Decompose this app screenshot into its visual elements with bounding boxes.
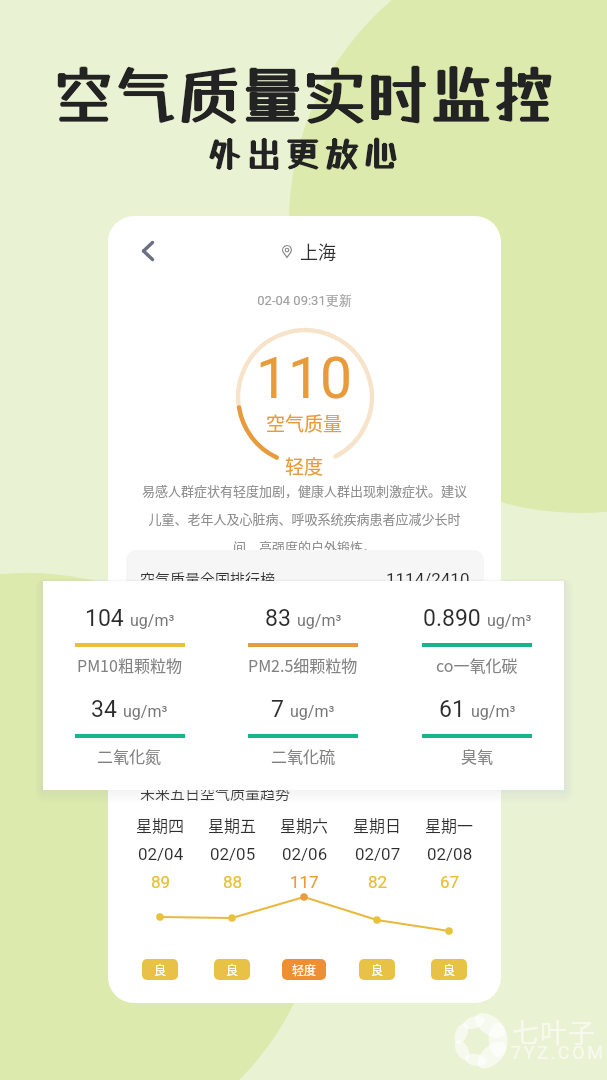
staticText: 02/07 [355, 844, 401, 864]
staticText: 星期四 [136, 813, 185, 836]
button[interactable]: 星期日 [341, 813, 413, 892]
staticText: 104 [85, 605, 124, 632]
staticText: 1114/2410 [386, 569, 470, 589]
button[interactable]: 7 [216, 696, 390, 767]
button[interactable]: 0.890 [390, 605, 564, 676]
staticText: 110 [256, 345, 353, 412]
button[interactable]: 星期四 [124, 813, 196, 892]
staticText: 空气质量实时监控 [52, 56, 556, 130]
staticText: 二氧化硫 [271, 744, 336, 767]
staticText: 易感人群症状有轻度加剧，健康人群出现刺激症状。建议儿童、老年人及心脏病、呼吸系统… [138, 481, 471, 556]
staticText: 良 [226, 961, 239, 978]
staticText: co一氧化碳 [436, 653, 518, 676]
staticText: ug/m³ [290, 702, 335, 721]
staticText: 空气质量实时监控 [52, 58, 556, 132]
staticText: 88 [223, 872, 243, 892]
staticText: 83 [265, 605, 291, 632]
staticText: 02/05 [210, 844, 256, 864]
staticText: 外出更放心 [207, 134, 402, 174]
button[interactable]: 良 [214, 959, 250, 980]
staticText: 61 [439, 696, 465, 723]
staticText: 空气质量全国排行榜 [140, 568, 276, 590]
staticText: 星期五 [208, 813, 257, 836]
staticText: ug/m³ [471, 702, 516, 721]
staticText: ug/m³ [130, 611, 175, 630]
staticText: 上海 [300, 238, 336, 264]
staticText: 外出更放心 [209, 134, 404, 174]
button[interactable]: 34 [43, 696, 216, 767]
button[interactable]: Back [130, 234, 164, 268]
staticText: ug/m³ [123, 702, 168, 721]
staticText: 117 [290, 872, 319, 892]
button[interactable]: 61 [390, 696, 564, 767]
button[interactable]: 星期五 [196, 813, 268, 892]
staticText: 臭氧 [461, 744, 494, 767]
button[interactable]: 104 [43, 605, 216, 676]
staticText: 外出更放心 [208, 133, 403, 173]
staticText: 空气质量 [266, 409, 343, 437]
staticText: 02/06 [282, 844, 328, 864]
staticText: 外出更放心 [208, 135, 403, 175]
staticText: 轻度 [285, 452, 324, 480]
button[interactable]: 星期一 [413, 813, 485, 892]
staticText: 34 [91, 696, 117, 723]
button[interactable]: 轻度 [282, 959, 326, 980]
staticText: 轻度 [292, 961, 317, 978]
staticText: 67 [440, 872, 460, 892]
staticText: 空气质量实时监控 [52, 57, 556, 131]
staticText: 二氧化氮 [97, 744, 162, 767]
staticText: 7YZ.COM [511, 1042, 606, 1063]
staticText: PM10粗颗粒物 [77, 653, 182, 676]
staticText: 02/04 [138, 844, 184, 864]
staticText: 未来五日空气质量趋势 [140, 782, 291, 804]
staticText: 良 [371, 961, 384, 978]
staticText: 七叶子 [512, 1012, 596, 1051]
staticText: 82 [368, 872, 388, 892]
staticText: 0.890 [423, 605, 481, 632]
staticText: 星期一 [425, 813, 474, 836]
staticText: ug/m³ [297, 611, 342, 630]
staticText: 外出更放心 [208, 134, 403, 174]
button[interactable]: 星期六 [268, 813, 340, 892]
staticText: 空气质量实时监控 [51, 57, 555, 131]
staticText: 良 [443, 961, 456, 978]
staticText: 02-04 09:31更新 [108, 292, 501, 308]
staticText: PM2.5细颗粒物 [248, 653, 358, 676]
button[interactable]: 良 [431, 959, 467, 980]
staticText: 良 [154, 961, 167, 978]
staticText: 空气质量实时监控 [53, 57, 557, 131]
staticText: 89 [151, 872, 171, 892]
button[interactable]: 良 [142, 959, 178, 980]
staticText: 02/08 [427, 844, 473, 864]
staticText: 星期六 [280, 813, 329, 836]
button[interactable]: 83 [216, 605, 390, 676]
staticText: ug/m³ [487, 611, 532, 630]
staticText: 星期日 [353, 813, 402, 836]
button[interactable]: 空气质量全国排行榜 [126, 550, 484, 608]
staticText: 7 [271, 696, 284, 723]
button[interactable]: 良 [359, 959, 395, 980]
